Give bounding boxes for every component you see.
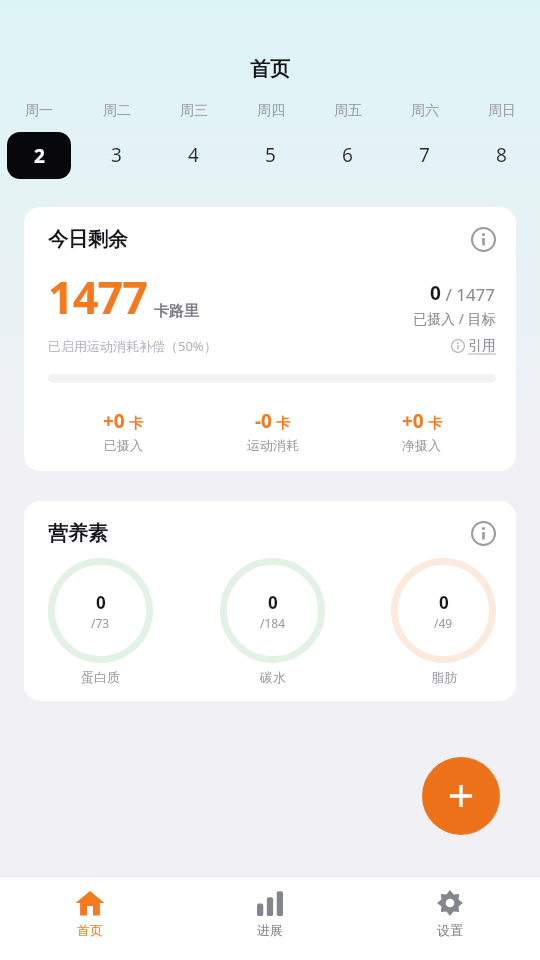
button[interactable]: 4 (155, 131, 232, 179)
staticText: 周日 (488, 102, 516, 120)
staticText: +0 (402, 408, 424, 434)
staticText: 2 (34, 143, 45, 169)
staticText: 进展 (257, 922, 283, 938)
staticText: +0 (103, 408, 125, 434)
staticText: 周二 (103, 102, 131, 120)
staticText: 0 (430, 280, 441, 306)
button[interactable]: 5 (232, 131, 309, 179)
button[interactable]: 0 (391, 558, 496, 663)
staticText: 引用 (468, 337, 496, 355)
staticText: 已摄入 (104, 437, 143, 453)
staticText: 卡 (276, 415, 290, 433)
staticText: 7 (419, 142, 430, 168)
staticText: / 1477 (441, 283, 496, 306)
staticText: 已摄入 / 目标 (413, 309, 496, 328)
staticText: 营养素 (48, 521, 471, 546)
staticText: 周一 (25, 102, 53, 120)
staticText: 卡 (129, 415, 143, 433)
staticText: 5 (265, 142, 276, 168)
button[interactable]: 添加记录 (422, 757, 500, 835)
staticText: 卡 (428, 415, 442, 433)
button[interactable]: 0 (220, 558, 325, 663)
staticText: 已启用运动消耗补偿（50%） (48, 337, 217, 355)
staticText: 0 (439, 591, 449, 614)
button[interactable]: 0 (48, 558, 153, 663)
button[interactable]: 6 (309, 131, 386, 179)
staticText: 8 (496, 142, 507, 168)
staticText: 周六 (411, 102, 439, 120)
button[interactable]: 引用说明 (451, 337, 496, 355)
staticText: 0 (96, 591, 106, 614)
staticText: -0 (255, 408, 272, 434)
staticText: 脂肪 (431, 669, 457, 685)
staticText: 6 (342, 142, 353, 168)
staticText: /49 (434, 615, 453, 631)
staticText: 0 (268, 591, 278, 614)
staticText: 净摄入 (402, 437, 441, 453)
button[interactable]: 首页 (0, 886, 180, 960)
staticText: 首页 (250, 57, 290, 82)
button[interactable]: -0 (198, 408, 347, 453)
staticText: 1477 (48, 266, 147, 327)
staticText: /73 (91, 615, 110, 631)
button[interactable]: 8 (463, 131, 540, 179)
button[interactable]: +0 (48, 408, 198, 453)
button[interactable]: 今日剩余 (24, 207, 516, 471)
staticText: 蛋白质 (81, 669, 120, 685)
button[interactable]: 关于今日剩余 (471, 227, 496, 252)
button[interactable]: 设置 (360, 886, 540, 960)
staticText: 运动消耗 (247, 437, 299, 453)
staticText: 3 (111, 142, 122, 168)
staticText: 设置 (437, 922, 463, 938)
staticText: 卡路里 (154, 302, 199, 321)
staticText: /184 (260, 615, 286, 631)
button[interactable]: 关于营养素 (471, 521, 496, 546)
staticText: 今日剩余 (48, 227, 471, 252)
staticText: 周五 (334, 102, 362, 120)
staticText: 碳水 (260, 669, 286, 685)
button[interactable]: 3 (78, 131, 155, 179)
button[interactable]: +0 (347, 408, 496, 453)
button[interactable]: 7 (386, 131, 463, 179)
staticText: 周三 (180, 102, 208, 120)
button[interactable]: 2 (7, 132, 71, 179)
staticText: 首页 (77, 922, 103, 938)
button[interactable]: 引用说明 (451, 339, 465, 353)
staticText: 周四 (257, 102, 285, 120)
button[interactable]: 营养素 (24, 501, 516, 701)
staticText: 4 (188, 142, 199, 168)
button[interactable]: 进展 (180, 886, 360, 960)
